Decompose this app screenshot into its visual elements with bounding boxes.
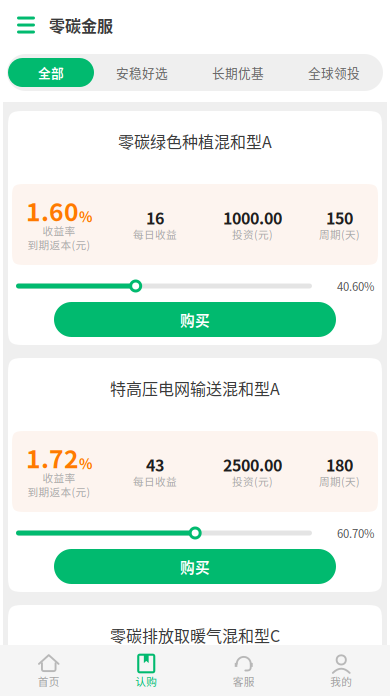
staticText: 投资(元) [232,226,273,242]
staticText: 1.60 [26,193,79,228]
button[interactable]: 购买 [54,302,336,337]
staticText: 安稳好选 [116,63,168,82]
staticText: 180 [326,453,353,476]
button[interactable]: 首页 [0,645,97,696]
staticText: 43 [146,453,164,476]
staticText: 每日收益 [133,473,177,489]
staticText: 40.60% [337,278,374,294]
button[interactable]: 购买 [54,549,336,584]
staticText: 150 [326,206,353,229]
staticText: 零碳绿色种植混和型A [118,129,272,153]
staticText: 客服 [233,673,255,689]
button[interactable]: 菜单 [11,0,41,50]
staticText: 首页 [38,673,60,689]
staticText: 2500.00 [223,453,282,476]
button[interactable]: 全球领投 [286,58,382,87]
staticText: 购买 [180,556,210,577]
staticText: % [79,206,92,226]
button[interactable]: 安稳好选 [94,58,190,87]
staticText: 认购 [135,673,157,689]
staticText: 60.70% [337,525,374,541]
button[interactable]: 我的 [292,645,390,696]
staticText: 长期优基 [212,63,264,82]
button[interactable]: 全部 [8,58,94,87]
button[interactable]: 客服 [195,645,292,696]
button[interactable]: 认购 [97,645,195,696]
staticText: 周期(天) [319,473,360,489]
staticText: 周期(天) [319,226,360,242]
staticText: 到期返本(元) [27,237,90,252]
staticText: 16 [146,206,164,229]
button[interactable]: 长期优基 [190,58,286,87]
staticText: 全部 [38,63,64,82]
staticText: 我的 [330,673,352,689]
staticText: 特高压电网输送混和型A [110,376,280,400]
staticText: 收益率 [42,470,75,485]
staticText: 全球领投 [308,63,360,82]
staticText: 到期返本(元) [27,484,90,499]
staticText: % [79,453,92,473]
staticText: 每日收益 [133,226,177,242]
staticText: 收益率 [42,223,75,238]
staticText: 投资(元) [232,473,273,489]
staticText: 购买 [180,309,210,330]
staticText: 零碳金服 [49,13,113,37]
staticText: 零碳排放取暖气混和型C [110,623,280,647]
staticText: 1000.00 [223,206,282,229]
staticText: 1.72 [26,440,79,475]
